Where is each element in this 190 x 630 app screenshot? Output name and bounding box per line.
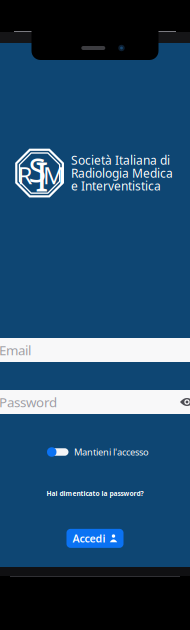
staticText: Radiologia Medica <box>71 165 173 181</box>
staticText: Società Italiana di <box>71 152 170 168</box>
staticText: Accedi <box>72 531 105 545</box>
staticText: Hai dimenticato la password? <box>46 489 143 498</box>
button[interactable]: Email <box>0 338 190 362</box>
staticText: R <box>17 159 32 191</box>
staticText: I <box>35 149 49 202</box>
button[interactable]: Accedi <box>66 529 123 548</box>
staticText: Password <box>0 393 57 411</box>
button[interactable]: Hai dimenticato la password? <box>38 487 151 500</box>
button[interactable]: Mantieni l'accesso <box>0 445 190 459</box>
staticText: Mantieni l'accesso <box>74 446 149 458</box>
staticText: M <box>43 159 65 191</box>
staticText: Email <box>0 341 31 359</box>
button[interactable]: Password <box>0 390 190 414</box>
staticText: e Interventistica <box>71 178 161 194</box>
staticText: S <box>28 149 46 191</box>
